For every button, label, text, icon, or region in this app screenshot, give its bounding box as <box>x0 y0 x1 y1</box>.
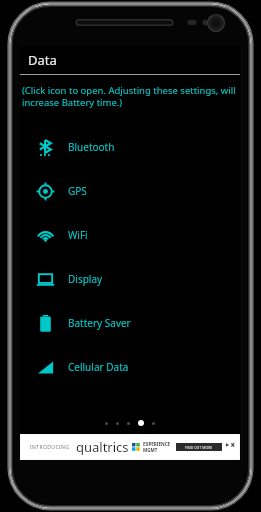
staticText: GPS <box>68 184 87 198</box>
button[interactable]: Bluetooth <box>20 125 240 169</box>
staticText: (Click icon to open. Adjusting these set… <box>22 84 236 109</box>
other: Ad choices <box>225 442 236 453</box>
staticText: Cellular Data <box>68 360 129 374</box>
staticText: EXPERIENCE <box>143 441 171 447</box>
staticText: qualtrics <box>76 438 129 456</box>
staticText: WiFi <box>68 228 88 242</box>
staticText: Display <box>68 272 103 286</box>
staticText: Battery Saver <box>68 316 131 330</box>
button[interactable]: Cellular Data <box>20 345 240 389</box>
button[interactable]: Battery Saver <box>20 301 240 345</box>
button[interactable]: INTRODUCING <box>20 434 240 460</box>
button[interactable]: WiFi <box>20 213 240 257</box>
staticText: FIND OUT MORE <box>185 445 213 450</box>
staticText: INTRODUCING <box>30 444 70 451</box>
staticText: MGMT <box>143 447 158 453</box>
button[interactable]: Display <box>20 257 240 301</box>
staticText: Data <box>28 51 57 69</box>
staticText: Bluetooth <box>68 140 115 154</box>
button[interactable]: GPS <box>20 169 240 213</box>
